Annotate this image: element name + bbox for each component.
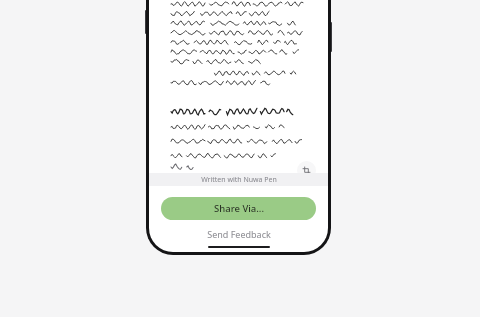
button[interactable]: Send Feedback <box>149 226 328 242</box>
staticText: Send Feedback <box>207 228 271 240</box>
button[interactable]: Written with Nuwa Pen <box>149 173 328 186</box>
button[interactable]: Crop note <box>297 161 316 180</box>
staticText: Share Via... <box>214 202 264 215</box>
button[interactable]: Share Via... <box>161 197 316 220</box>
staticText: Written with Nuwa Pen <box>201 175 277 185</box>
